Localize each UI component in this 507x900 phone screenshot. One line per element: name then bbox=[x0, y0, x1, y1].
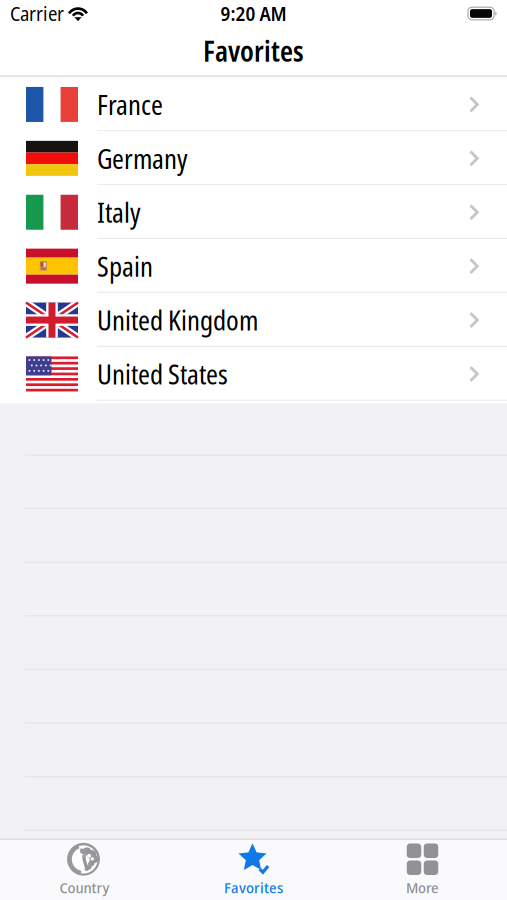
staticText: Italy bbox=[97, 194, 141, 231]
staticText: Favorites bbox=[203, 32, 304, 70]
button[interactable]: United Kingdom bbox=[0, 293, 507, 347]
staticText: Spain bbox=[97, 248, 153, 285]
button[interactable]: France bbox=[0, 77, 507, 131]
staticText: 9:20 AM bbox=[220, 0, 286, 27]
staticText: Carrier bbox=[10, 0, 64, 27]
button[interactable]: Spain bbox=[0, 239, 507, 293]
staticText: Favorites bbox=[224, 877, 283, 898]
staticText: United States bbox=[97, 355, 228, 392]
button[interactable]: Favorites bbox=[169, 841, 338, 899]
staticText: Country bbox=[59, 877, 109, 898]
staticText: United Kingdom bbox=[97, 301, 258, 338]
button[interactable]: Italy bbox=[0, 185, 507, 239]
button[interactable]: Country bbox=[0, 841, 169, 899]
staticText: Germany bbox=[97, 140, 188, 177]
staticText: France bbox=[97, 86, 163, 123]
staticText: More bbox=[406, 877, 439, 898]
button[interactable]: Germany bbox=[0, 131, 507, 185]
button[interactable]: More bbox=[338, 841, 507, 899]
button[interactable]: United States bbox=[0, 347, 507, 401]
